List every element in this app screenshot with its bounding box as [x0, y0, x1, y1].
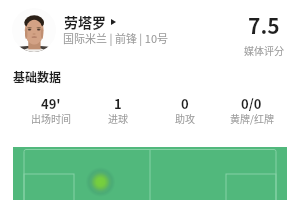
button[interactable]: 49' [17, 94, 84, 127]
staticText: 国际米兰 | 前锋 | 10号 [63, 30, 169, 46]
staticText: 基础数据 [13, 68, 62, 85]
staticText: 出场时间 [31, 111, 71, 125]
button[interactable]: 0 [151, 94, 218, 127]
staticText: 黄牌/红牌 [230, 111, 274, 125]
button[interactable]: 7.5 [228, 10, 300, 54]
staticText: 1 [114, 94, 122, 113]
staticText: 0 [181, 94, 189, 113]
button[interactable]: 劳塔罗 [64, 12, 116, 32]
button[interactable]: 0/0 [218, 94, 285, 127]
staticText: 0/0 [241, 94, 262, 113]
staticText: 49' [41, 94, 61, 113]
button[interactable]: Player photo [12, 8, 56, 52]
staticText: 劳塔罗 [64, 12, 106, 32]
staticText: 进球 [108, 111, 128, 125]
staticText: 助攻 [175, 111, 195, 125]
staticText: 媒体评分 [244, 43, 284, 57]
button[interactable]: 1 [84, 94, 151, 127]
staticText: 7.5 [248, 10, 280, 40]
